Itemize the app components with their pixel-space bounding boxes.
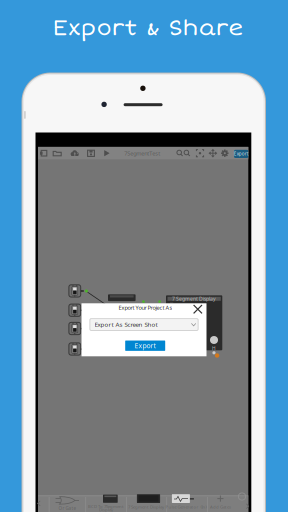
staticText: Export xyxy=(234,151,249,157)
button[interactable]: Pan xyxy=(0,0,288,512)
staticText: Export xyxy=(134,341,155,350)
button[interactable]: New xyxy=(0,0,288,512)
button[interactable]: Upload to cloud xyxy=(0,0,288,512)
button[interactable]: Close xyxy=(0,0,288,512)
staticText: Export & Share xyxy=(52,14,243,42)
staticText: Or Gate xyxy=(58,505,76,511)
staticText: Export As Screen Shot xyxy=(95,320,158,329)
button[interactable]: Add Gates xyxy=(0,0,288,512)
button[interactable]: Export xyxy=(0,0,288,512)
button[interactable]: Export As Screen Shot xyxy=(0,0,288,512)
button[interactable]: BCD To 7Segment xyxy=(0,0,288,512)
staticText: H xyxy=(212,345,216,352)
staticText: Export Your Project As xyxy=(118,304,172,311)
staticText: BCD To 7Segment xyxy=(88,503,124,509)
button[interactable]: Open xyxy=(0,0,288,512)
button[interactable]: Pulse Generator (In) xyxy=(0,0,288,512)
button[interactable]: Zoom in xyxy=(0,0,288,512)
button[interactable]: Export xyxy=(0,0,288,512)
staticText: 7 Segment Display xyxy=(128,504,164,510)
button[interactable]: Save xyxy=(0,0,288,512)
staticText: Display xyxy=(99,507,113,512)
button[interactable]: Or Gate xyxy=(0,0,288,512)
staticText: 7 Segment Display xyxy=(172,295,216,302)
button[interactable]: 7 Segment Display xyxy=(0,0,288,512)
button[interactable]: Zoom to fit xyxy=(0,0,288,512)
staticText: 7SegmentTest xyxy=(124,149,160,157)
button[interactable]: Settings xyxy=(0,0,288,512)
staticText: Add Gates xyxy=(210,504,231,510)
staticText: Pulse Generator (In) xyxy=(165,504,206,510)
button[interactable]: Run xyxy=(0,0,288,512)
button[interactable]: Zoom out xyxy=(0,0,288,512)
